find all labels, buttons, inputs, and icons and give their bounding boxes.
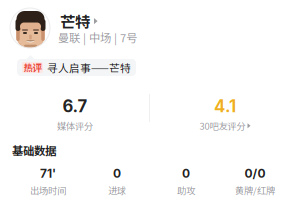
staticText: 0 xyxy=(182,166,190,180)
staticText: 4.1 xyxy=(214,96,236,116)
staticText: 出场时间 xyxy=(30,183,66,197)
staticText: 基础数据 xyxy=(12,142,56,158)
staticText: 曼联 | 中场 | 7号 xyxy=(58,29,137,45)
button[interactable]: Player photo xyxy=(10,8,50,48)
staticText: 寻人启事——芒特 xyxy=(47,60,131,75)
staticText: 黄牌/红牌 xyxy=(235,183,275,197)
button[interactable]: 芒特 xyxy=(60,10,98,32)
staticText: 芒特 xyxy=(60,10,90,32)
staticText: 进球 xyxy=(108,183,126,197)
staticText: 热评 xyxy=(23,61,41,74)
button[interactable]: 热评 xyxy=(17,59,136,76)
staticText: 0/0 xyxy=(244,166,265,180)
staticText: 71' xyxy=(40,166,56,180)
staticText: 助攻 xyxy=(177,183,195,197)
button[interactable]: 30吧友评分 xyxy=(150,119,300,132)
staticText: 6.7 xyxy=(62,96,87,116)
staticText: 媒体评分 xyxy=(57,119,93,132)
staticText: 0 xyxy=(113,166,121,180)
staticText: 30吧友评分 xyxy=(199,119,245,132)
